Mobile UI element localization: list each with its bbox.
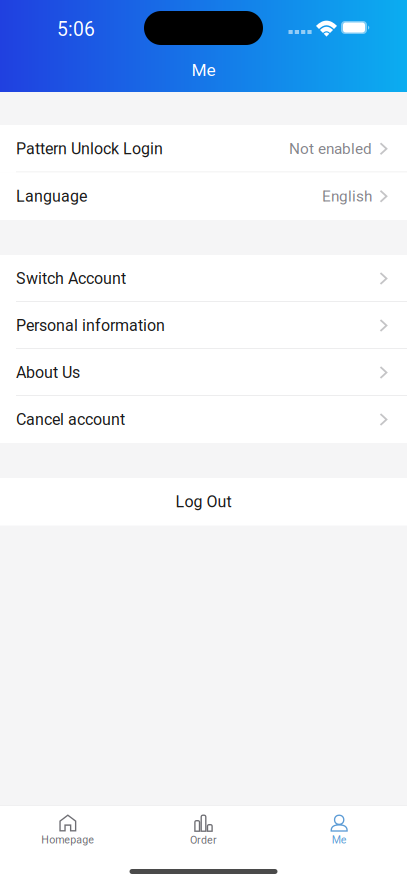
staticText: 5:06	[57, 18, 95, 41]
button[interactable]: Cancel account	[0, 396, 407, 443]
staticText: Order	[190, 834, 217, 846]
staticText: Me	[191, 60, 215, 80]
staticText: Homepage	[41, 833, 94, 846]
button[interactable]: Order	[136, 805, 271, 853]
staticText: Language	[16, 187, 87, 206]
staticText: Cancel account	[16, 410, 125, 429]
staticText: Switch Account	[16, 269, 126, 288]
staticText: Pattern Unlock Login	[16, 139, 163, 158]
button[interactable]: Personal information	[0, 302, 407, 349]
staticText: About Us	[16, 363, 80, 382]
button[interactable]: Homepage	[0, 805, 136, 853]
staticText: Personal information	[16, 316, 165, 335]
button[interactable]: Me	[271, 805, 407, 853]
button[interactable]: Log Out	[0, 478, 407, 525]
staticText: Me	[332, 834, 347, 846]
staticText: English	[322, 187, 372, 205]
button[interactable]: About Us	[0, 349, 407, 396]
button[interactable]: Language	[0, 172, 407, 220]
button[interactable]: Pattern Unlock Login	[0, 125, 407, 172]
staticText: Not enabled	[289, 140, 372, 158]
staticText: Log Out	[175, 492, 231, 511]
button[interactable]: Switch Account	[0, 255, 407, 302]
